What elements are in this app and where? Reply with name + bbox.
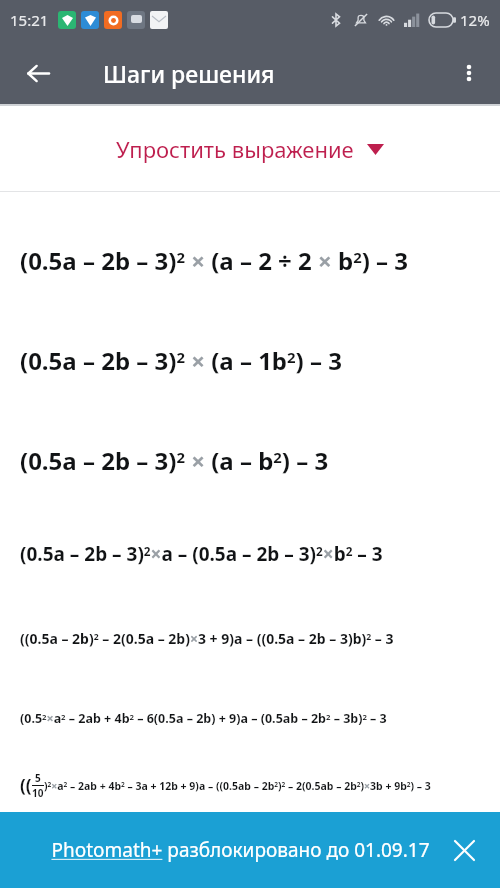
button[interactable]: (0.5a – 2b – 3)2 × (a – 2 ÷ 2 × b2) – 3	[0, 210, 500, 310]
button[interactable]: (0.5a – 2b – 3)2 × (a – 1b2) – 3	[0, 310, 500, 410]
staticText: ((	[20, 774, 32, 797]
staticText: Упростить выражение	[116, 134, 354, 164]
staticText: (0.52×a2 – 2ab + 4b2 – 6(0.5a – 2b) + 9)…	[20, 710, 387, 727]
button[interactable]: ((	[0, 758, 500, 812]
staticText: 5	[35, 771, 41, 785]
button[interactable]: Упростить выражение	[0, 106, 500, 191]
staticText: (0.5a – 2b – 3)2 × (a – 2 ÷ 2 × b2) – 3	[20, 244, 409, 277]
staticText: (0.5a – 2b – 3)2 × (a – 1b2) – 3	[20, 344, 342, 377]
button[interactable]: (0.5a – 2b – 3)2×a – (0.5a – 2b – 3)2×b2…	[0, 510, 500, 598]
staticText: ((0.5a – 2b)2 – 2(0.5a – 2b)×3 + 9)a – (…	[20, 629, 394, 648]
staticText: 15:21	[10, 10, 49, 30]
staticText: Шаги решения	[103, 58, 275, 89]
button[interactable]: (0.5a – 2b – 3)2 × (a – b2) – 3	[0, 410, 500, 510]
staticText: Photomath+ разблокировано до 01.09.17	[51, 837, 430, 863]
staticText: 12%	[460, 10, 490, 30]
button[interactable]: Photomath+ разблокировано до 01.09.17	[0, 812, 500, 888]
staticText: 10	[32, 786, 44, 800]
staticText: )2×a2 – 2ab + 4b2 – 3a + 12b + 9)a – ((0…	[44, 779, 431, 793]
button[interactable]: ((0.5a – 2b)2 – 2(0.5a – 2b)×3 + 9)a – (…	[0, 598, 500, 678]
button[interactable]: (0.52×a2 – 2ab + 4b2 – 6(0.5a – 2b) + 9)…	[0, 678, 500, 758]
button[interactable]: More options	[446, 50, 492, 96]
staticText: (0.5a – 2b – 3)2×a – (0.5a – 2b – 3)2×b2…	[20, 541, 383, 567]
button[interactable]: Close	[442, 828, 486, 872]
button[interactable]: Back	[14, 49, 62, 97]
staticText: (0.5a – 2b – 3)2 × (a – b2) – 3	[20, 444, 329, 477]
